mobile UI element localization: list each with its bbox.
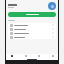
button[interactable]	[8, 23, 56, 27]
button[interactable]	[8, 27, 56, 31]
button[interactable]	[8, 35, 56, 39]
button[interactable]: Activity	[36, 54, 41, 58]
button[interactable]	[8, 12, 56, 17]
button[interactable]: Settings	[50, 54, 55, 58]
button[interactable]	[8, 31, 56, 35]
button[interactable]: Profile	[48, 2, 56, 10]
button[interactable]: Search	[23, 54, 28, 58]
button[interactable]: Home	[9, 54, 14, 58]
